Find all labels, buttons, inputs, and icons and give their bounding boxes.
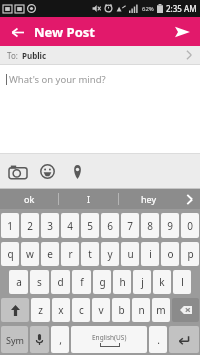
button[interactable]: Emoji (37, 161, 58, 182)
button[interactable]: q (1, 242, 19, 266)
staticText: t (88, 247, 92, 261)
staticText: Public (22, 50, 47, 61)
button[interactable]: w (21, 242, 39, 266)
button[interactable]: 5 (81, 213, 99, 238)
staticText: 9 (167, 219, 173, 233)
button[interactable]: 7 (121, 213, 139, 238)
staticText: m (156, 303, 166, 317)
button[interactable]: t (81, 242, 99, 266)
button[interactable]: 0 (181, 213, 199, 238)
staticText: o (167, 247, 174, 261)
button[interactable]: To: (0, 46, 200, 64)
button[interactable]: 2 (21, 213, 39, 238)
button[interactable]: Voice input (30, 326, 49, 353)
button[interactable]: l (173, 270, 191, 294)
staticText: w (26, 247, 34, 261)
staticText: 62% (142, 5, 154, 13)
button[interactable]: Camera (7, 161, 28, 182)
button[interactable]: 1 (1, 213, 19, 238)
button[interactable]: a (9, 270, 28, 294)
button[interactable]: x (52, 298, 70, 322)
button[interactable]: c (72, 298, 90, 322)
staticText: 4 (67, 219, 73, 233)
button[interactable]: m (152, 298, 170, 322)
staticText: 3 (47, 219, 53, 233)
button[interactable]: Sym (1, 326, 28, 353)
staticText: . (157, 333, 160, 347)
button[interactable]: 8 (141, 213, 159, 238)
staticText: 2:35 AM (166, 3, 197, 14)
button[interactable]: j (133, 270, 151, 294)
staticText: 7 (127, 219, 133, 233)
staticText: 0 (187, 219, 193, 233)
button[interactable]: b (112, 298, 130, 322)
staticText: 6 (107, 219, 113, 233)
staticText: ok (24, 193, 35, 205)
staticText: I (87, 193, 91, 205)
button[interactable]: u (121, 242, 139, 266)
button[interactable]: Enter (169, 326, 199, 353)
staticText: What's on your mind? (9, 73, 106, 86)
staticText: d (57, 275, 64, 289)
staticText: a (16, 275, 22, 289)
staticText: h (119, 275, 126, 289)
staticText: q (7, 247, 14, 261)
button[interactable]: , (51, 326, 69, 353)
button[interactable]: More suggestions (178, 189, 200, 209)
button[interactable]: n (132, 298, 150, 322)
button[interactable]: v (92, 298, 110, 322)
button[interactable]: f (72, 270, 91, 294)
staticText: r (68, 247, 73, 261)
button[interactable]: 9 (161, 213, 179, 238)
button[interactable]: Back (5, 20, 29, 44)
staticText: x (58, 303, 64, 317)
button[interactable]: 6 (101, 213, 119, 238)
button[interactable]: h (113, 270, 131, 294)
button[interactable]: 4 (61, 213, 79, 238)
button[interactable]: Send (169, 19, 195, 45)
button[interactable]: Location (67, 161, 88, 182)
staticText: c (79, 303, 84, 317)
staticText: u (127, 247, 134, 261)
staticText: n (138, 303, 145, 317)
staticText: v (98, 303, 104, 317)
button[interactable]: . (149, 326, 167, 353)
staticText: p (187, 247, 194, 261)
button[interactable]: Shift (1, 298, 29, 322)
button[interactable]: s (30, 270, 49, 294)
staticText: l (181, 275, 184, 289)
staticText: f (80, 275, 84, 289)
button[interactable]: 3 (41, 213, 59, 238)
staticText: To: (7, 50, 18, 61)
staticText: 1 (7, 219, 13, 233)
button[interactable]: p (181, 242, 199, 266)
button[interactable]: d (51, 270, 70, 294)
staticText: e (47, 247, 53, 261)
staticText: 5 (87, 219, 93, 233)
staticText: Sym (6, 334, 24, 346)
staticText: i (149, 247, 152, 261)
staticText: hey (141, 193, 157, 205)
button[interactable]: g (93, 270, 111, 294)
staticText: 2 (27, 219, 33, 233)
staticText: g (99, 275, 106, 289)
button[interactable]: hey (119, 189, 178, 209)
button[interactable]: k (153, 270, 171, 294)
staticText: z (38, 303, 43, 317)
staticText: b (118, 303, 125, 317)
button[interactable]: e (41, 242, 59, 266)
button[interactable]: r (61, 242, 79, 266)
button[interactable]: i (141, 242, 159, 266)
button[interactable]: Backspace (172, 298, 199, 322)
staticText: s (37, 275, 42, 289)
staticText: k (159, 275, 165, 289)
button[interactable]: z (31, 298, 50, 322)
staticText: y (107, 247, 113, 261)
button[interactable]: y (101, 242, 119, 266)
button[interactable]: Space (71, 326, 147, 353)
staticText: New Post (34, 23, 95, 41)
button[interactable]: I (59, 189, 118, 209)
button[interactable]: ok (0, 189, 58, 209)
staticText: 8 (147, 219, 153, 233)
button[interactable]: o (161, 242, 179, 266)
